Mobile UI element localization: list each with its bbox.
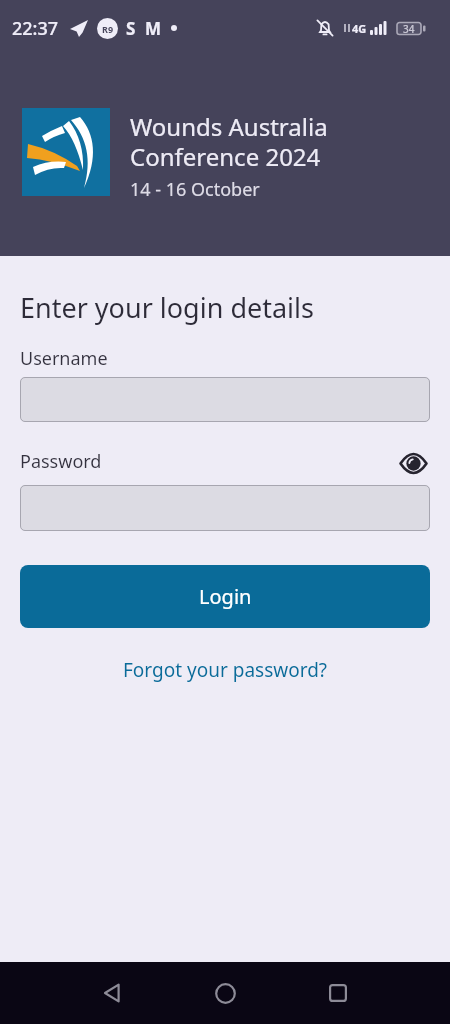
staticText: S — [126, 17, 136, 40]
staticText: R9 — [102, 23, 114, 35]
staticText: 22:37 — [12, 16, 59, 41]
staticText: 14 - 16 October — [130, 177, 260, 202]
staticText: Username — [20, 346, 108, 371]
button[interactable] — [99, 979, 127, 1007]
staticText: Login — [199, 583, 252, 610]
button[interactable] — [324, 979, 352, 1007]
staticText: 4G — [352, 21, 367, 36]
button[interactable] — [20, 485, 430, 531]
staticText: M — [145, 17, 162, 40]
staticText: Password — [20, 449, 102, 474]
staticText: 34 — [403, 22, 415, 36]
button[interactable] — [211, 979, 239, 1007]
staticText: Forgot your password? — [123, 657, 328, 683]
button[interactable]: Forgot your password? — [123, 657, 328, 683]
button[interactable] — [399, 453, 428, 474]
staticText: Enter your login details — [20, 289, 314, 326]
button[interactable]: Login — [20, 565, 430, 628]
button[interactable] — [20, 377, 430, 422]
staticText: Wounds Australia Conference 2024 — [130, 110, 328, 173]
